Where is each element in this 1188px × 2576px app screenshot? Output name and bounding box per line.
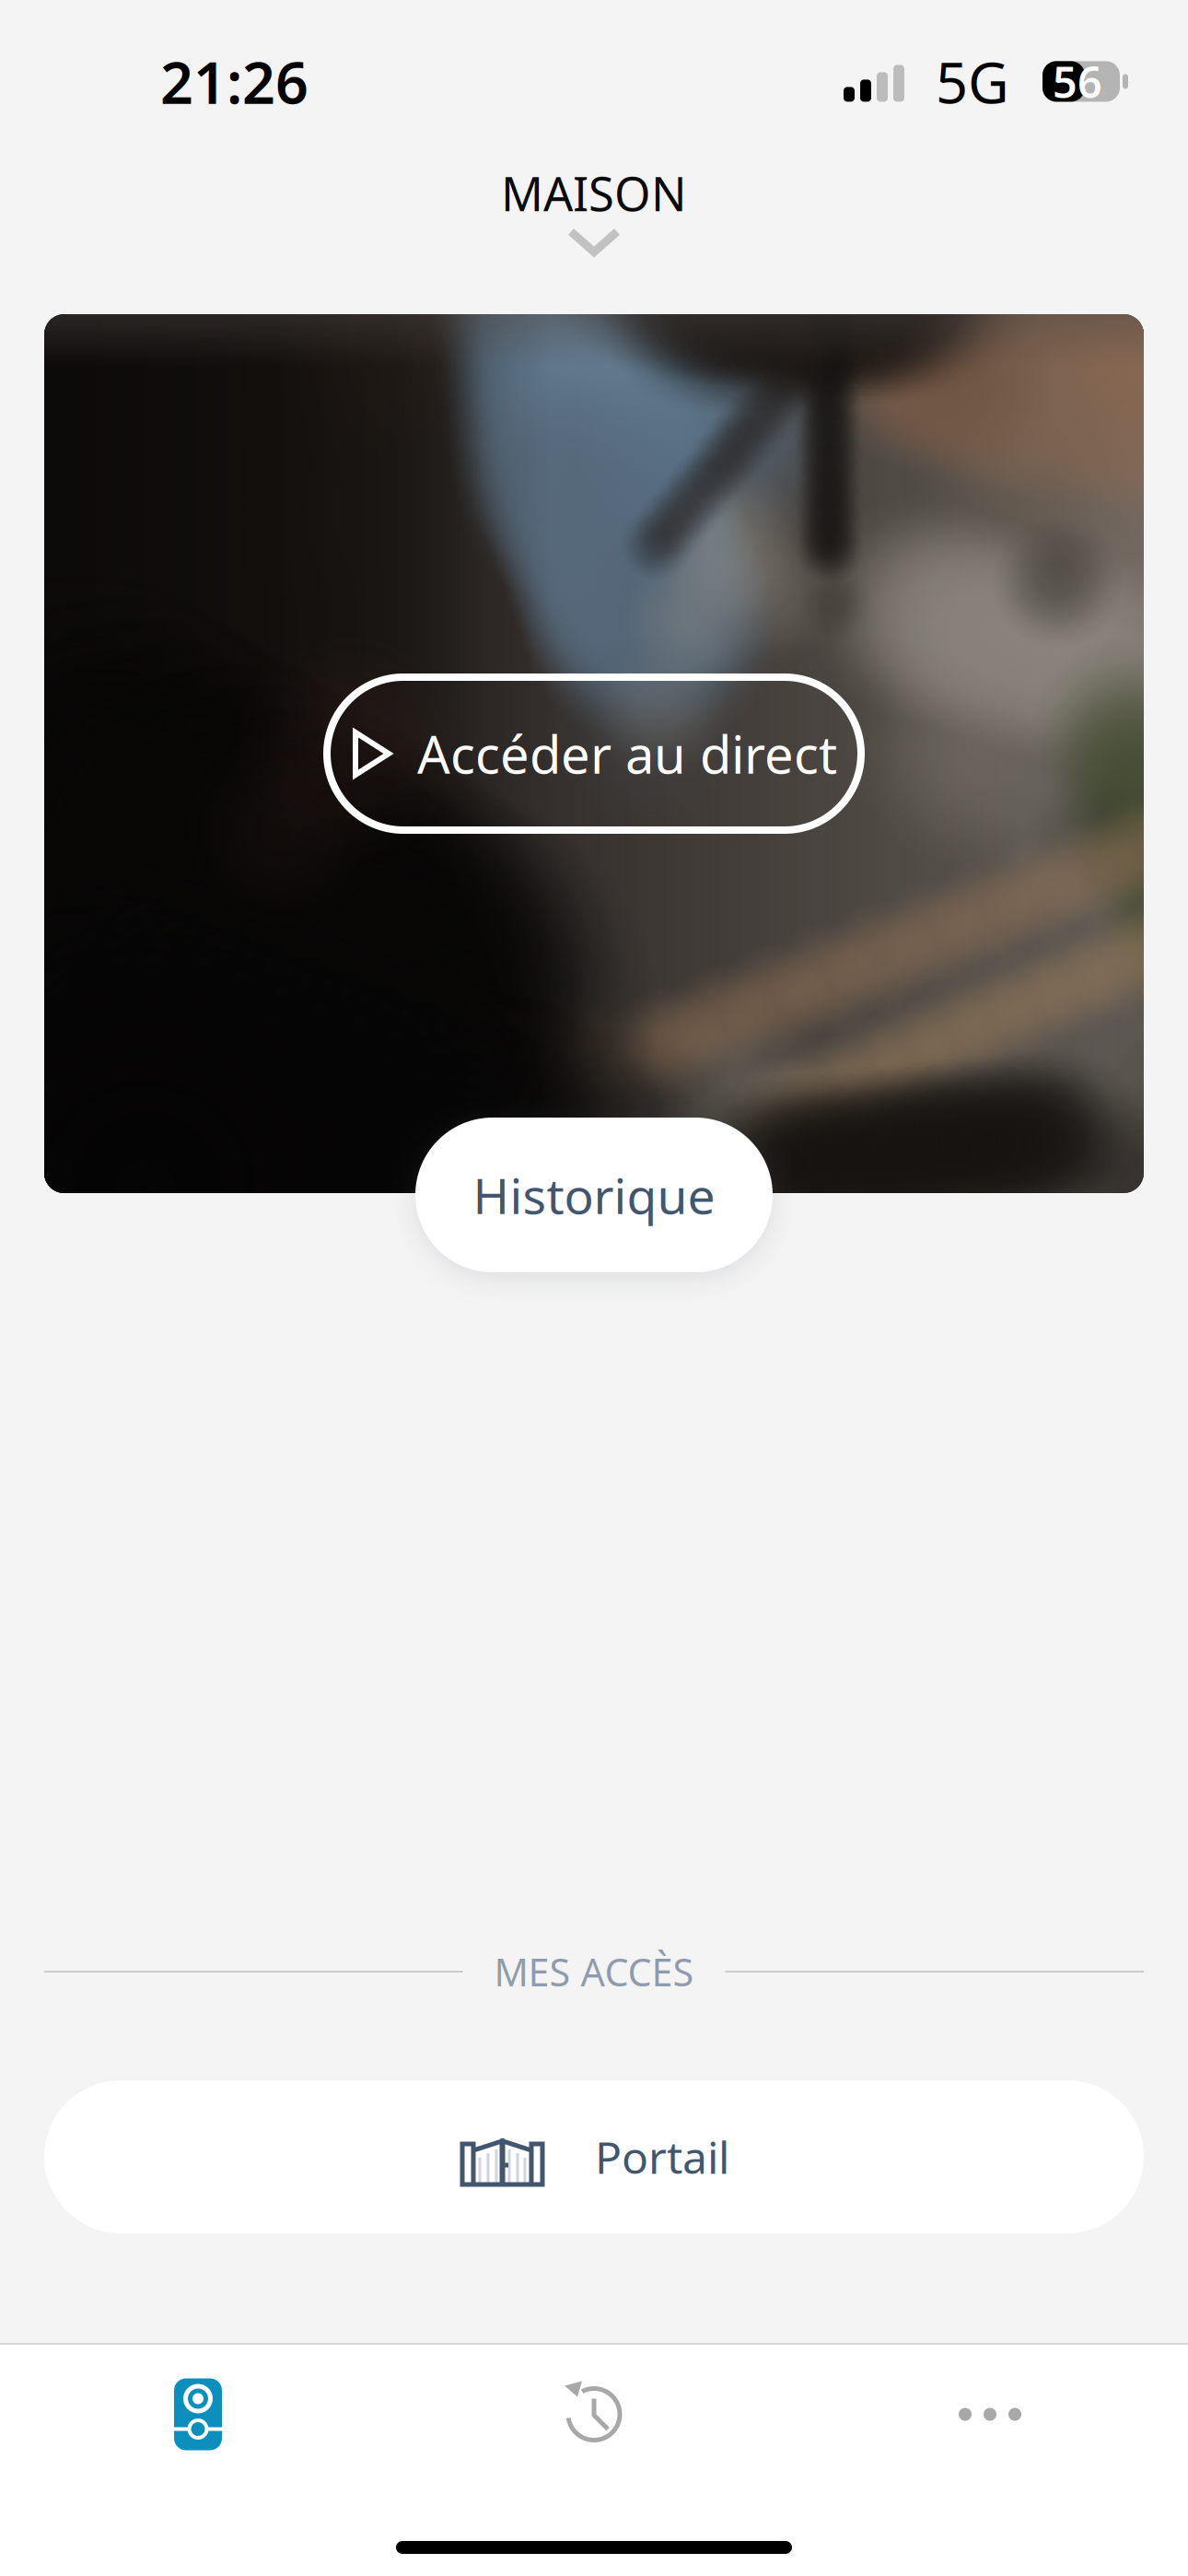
button[interactable]: Historique bbox=[415, 1118, 773, 1272]
button[interactable]: Interphone bbox=[0, 2355, 396, 2473]
button[interactable]: Historique bbox=[396, 2355, 792, 2473]
staticText: Historique bbox=[473, 1162, 715, 1228]
staticText: MES ACCÈS bbox=[494, 1946, 694, 1997]
button[interactable]: Accéder au direct bbox=[327, 677, 861, 830]
button[interactable]: Portail bbox=[44, 2080, 1144, 2233]
button[interactable]: Plus bbox=[792, 2355, 1188, 2473]
button[interactable]: MAISON bbox=[401, 153, 787, 273]
staticText: 56 bbox=[1053, 53, 1102, 110]
staticText: 21:26 bbox=[160, 43, 309, 120]
staticText: 5G bbox=[936, 44, 1009, 119]
staticText: MAISON bbox=[501, 162, 687, 224]
staticText: Portail bbox=[595, 2127, 729, 2186]
staticText: Accéder au direct bbox=[417, 719, 837, 788]
